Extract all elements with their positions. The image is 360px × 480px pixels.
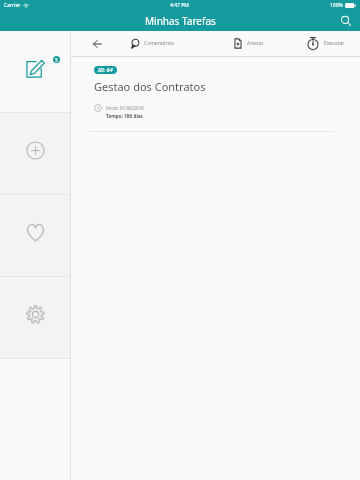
button[interactable]: Executar	[307, 31, 351, 56]
button[interactable]: ID: 64	[94, 66, 117, 74]
staticText: Anexar	[247, 40, 264, 47]
button[interactable]: Anexar	[234, 31, 270, 56]
button[interactable]: Tarefas	[0, 31, 70, 112]
staticText: Tempo: 186 dias	[106, 113, 143, 119]
button[interactable]: Comentários	[131, 31, 181, 56]
staticText: Gestao dos Contratos	[94, 79, 206, 94]
button[interactable]: Pesquisar	[336, 11, 356, 31]
staticText: Início: 01/06/2016	[106, 105, 144, 111]
staticText: 5	[55, 57, 58, 63]
button[interactable]: Favoritos	[0, 195, 70, 276]
staticText: 4:47 PM	[170, 2, 189, 9]
staticText: Executar	[324, 40, 345, 47]
staticText: Minhas Tarefas	[145, 14, 216, 28]
staticText: ID: 64	[98, 66, 113, 74]
button[interactable]: Configuracoes	[0, 277, 70, 358]
staticText: 100%	[330, 2, 343, 9]
staticText: Carrier	[4, 2, 21, 9]
button[interactable]: Adicionar	[0, 113, 70, 194]
button[interactable]: Voltar	[79, 31, 115, 56]
staticText: Comentários	[144, 40, 175, 47]
